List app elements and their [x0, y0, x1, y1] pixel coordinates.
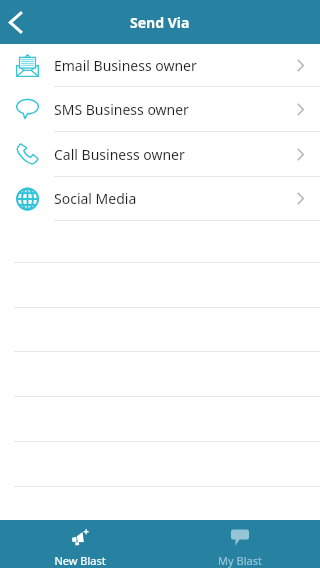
button[interactable]: Social Media: [0, 176, 320, 221]
button[interactable]: My Blast: [160, 520, 320, 568]
staticText: New Blast: [54, 553, 106, 568]
button[interactable]: Call Business owner: [0, 131, 320, 177]
staticText: Social Media: [54, 189, 137, 208]
staticText: My Blast: [218, 553, 262, 568]
staticText: Call Business owner: [54, 145, 185, 164]
staticText: Send Via: [130, 13, 190, 32]
button[interactable]: SMS Business owner: [0, 86, 320, 132]
button[interactable]: Back: [0, 0, 36, 44]
staticText: SMS Business owner: [54, 100, 189, 119]
staticText: Email Business owner: [54, 56, 197, 75]
button[interactable]: Email Business owner: [0, 44, 320, 87]
button[interactable]: New Blast: [0, 520, 160, 568]
